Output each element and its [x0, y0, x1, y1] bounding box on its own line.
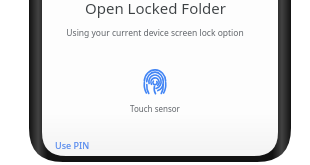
staticText: Open Locked Folder	[85, 0, 226, 18]
staticText: Touch sensor	[130, 103, 180, 114]
button[interactable]: Use PIN	[53, 137, 92, 153]
staticText: Using your current device screen lock op…	[66, 27, 244, 39]
staticText: Use PIN	[55, 139, 90, 151]
button[interactable]: Fingerprint sensor	[142, 68, 168, 94]
